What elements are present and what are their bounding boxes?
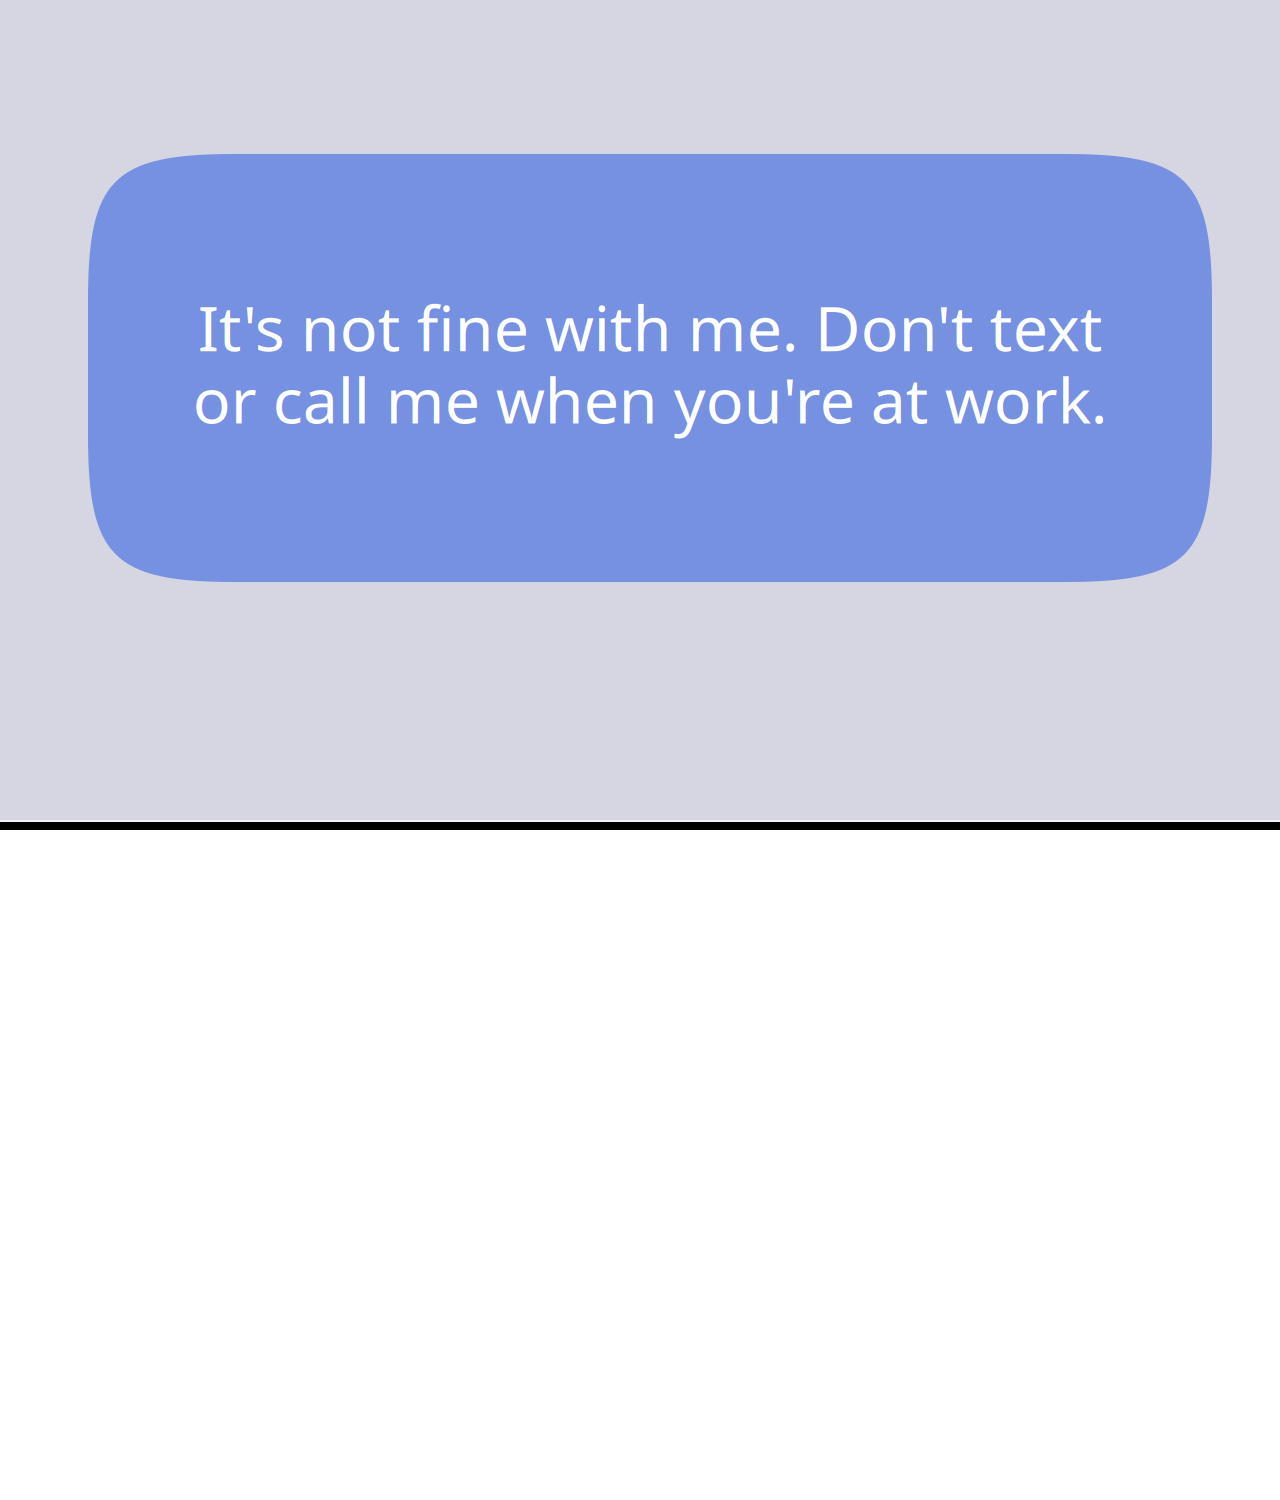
staticText: It's not fine with me. Don't text or cal…	[192, 285, 1107, 441]
button[interactable]: It's not fine with me. Don't text or cal…	[88, 154, 1212, 582]
